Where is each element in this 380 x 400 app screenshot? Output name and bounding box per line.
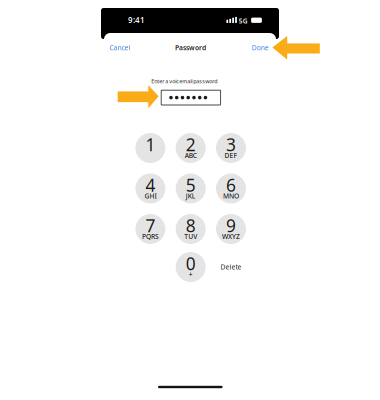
staticText: +	[189, 270, 193, 279]
staticText: 7	[145, 214, 155, 237]
staticText: 9	[226, 214, 236, 237]
staticText: 5G	[239, 16, 248, 25]
staticText: 6	[226, 174, 236, 197]
button[interactable]: Cancel	[107, 41, 139, 54]
staticText: DEF	[224, 151, 237, 160]
staticText: WXYZ	[222, 232, 240, 241]
staticText: Cancel	[109, 43, 130, 52]
button[interactable]: Delete	[216, 252, 246, 282]
staticText: GHI	[144, 191, 156, 200]
staticText: JKL	[186, 191, 196, 200]
staticText: 8	[186, 214, 196, 237]
staticText: Enter a voicemail password	[151, 78, 217, 85]
staticText: ABC	[185, 151, 197, 160]
staticText: PQRS	[142, 232, 159, 241]
staticText: 4	[145, 174, 155, 197]
button[interactable]: 2	[176, 133, 206, 163]
staticText: Done	[252, 43, 269, 52]
staticText: 2	[186, 133, 196, 156]
staticText: MNO	[223, 191, 239, 200]
button[interactable]: Done	[243, 41, 271, 54]
staticText: TUV	[184, 232, 197, 241]
staticText: Delete	[220, 263, 241, 271]
staticText: 0	[186, 252, 196, 275]
button[interactable]: 7	[135, 214, 165, 244]
button[interactable]: 0	[176, 252, 206, 282]
staticText: Password	[175, 43, 206, 52]
staticText: 9:41	[128, 15, 145, 25]
staticText: 3	[226, 133, 236, 156]
staticText: 5	[186, 174, 196, 197]
staticText: 1	[145, 133, 155, 156]
button[interactable]: 9	[216, 214, 246, 244]
button[interactable]: 6	[216, 173, 246, 203]
button[interactable]: 1	[135, 133, 165, 163]
button[interactable]: 4	[135, 173, 165, 203]
button[interactable]: 8	[176, 214, 206, 244]
button[interactable]: 3	[216, 133, 246, 163]
button[interactable]: 5	[176, 173, 206, 203]
